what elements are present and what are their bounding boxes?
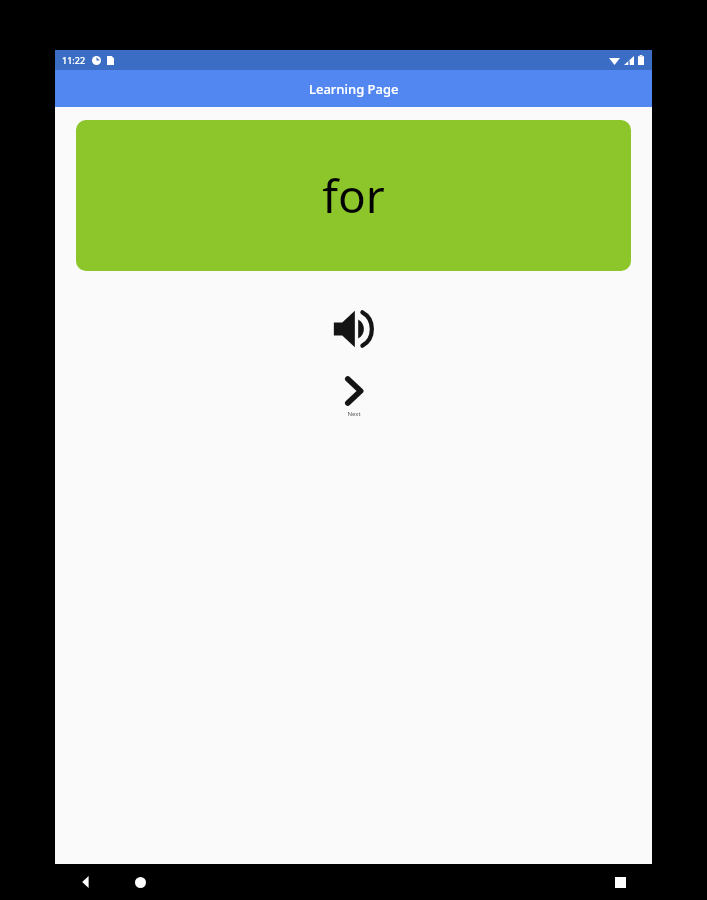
button[interactable]: for bbox=[76, 120, 631, 271]
staticText: Learning Page bbox=[309, 80, 399, 98]
staticText: for bbox=[322, 164, 385, 227]
staticText: 11:22 bbox=[62, 54, 86, 66]
button[interactable]: Play pronunciation bbox=[330, 305, 378, 353]
button[interactable]: Back bbox=[70, 866, 102, 898]
button[interactable]: Next bbox=[324, 375, 384, 418]
staticText: Next bbox=[347, 410, 361, 418]
button[interactable]: Recent apps bbox=[604, 866, 636, 898]
button[interactable]: Home bbox=[124, 866, 156, 898]
